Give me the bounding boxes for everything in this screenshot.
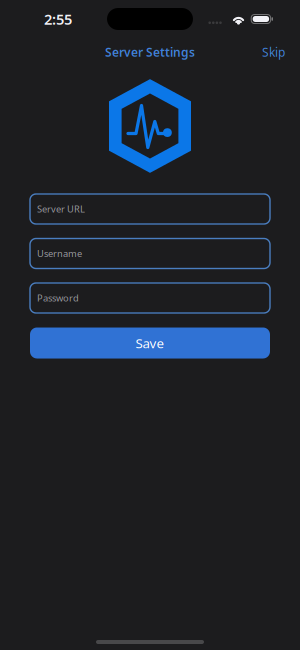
button[interactable]: Save — [30, 327, 270, 358]
staticText: Save — [135, 334, 164, 352]
staticText: Server Settings — [105, 44, 195, 60]
staticText: 2:55 — [44, 9, 72, 29]
staticText: Password — [37, 292, 79, 304]
staticText: Skip — [262, 44, 285, 60]
staticText: Server URL — [37, 203, 85, 215]
staticText: Username — [37, 247, 82, 260]
button[interactable]: Skip — [256, 40, 291, 64]
